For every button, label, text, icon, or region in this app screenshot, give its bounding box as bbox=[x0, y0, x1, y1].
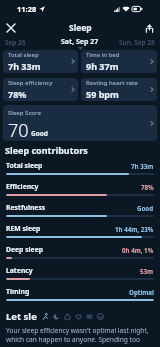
button[interactable]: Total sleep bbox=[0, 157, 160, 178]
staticText: Good bbox=[137, 204, 154, 212]
staticText: 59 bpm bbox=[86, 88, 119, 100]
button[interactable]: Share bbox=[142, 21, 156, 35]
staticText: 78% bbox=[141, 183, 154, 191]
staticText: Resting heart rate bbox=[86, 79, 138, 87]
staticText: Deep sleep bbox=[6, 245, 44, 254]
button[interactable]: Sep 26 bbox=[0, 39, 26, 48]
staticText: Your sleep efficiency wasn't optimal las… bbox=[6, 326, 158, 344]
button[interactable]: Sleep efficiency bbox=[3, 78, 78, 101]
staticText: Total sleep bbox=[6, 161, 43, 170]
staticText: 78% bbox=[8, 88, 27, 100]
staticText: Sleep contributors bbox=[5, 144, 88, 156]
staticText: Optimal bbox=[129, 288, 154, 296]
staticText: 53m bbox=[140, 267, 154, 275]
staticText: Sleep Score bbox=[8, 109, 41, 117]
staticText: Good bbox=[31, 129, 48, 138]
button[interactable]: Heart bbox=[73, 310, 84, 322]
button[interactable]: Deep sleep bbox=[0, 241, 160, 262]
button[interactable]: Restfulness bbox=[0, 199, 160, 220]
button[interactable]: Stress bbox=[84, 310, 95, 322]
button[interactable]: Readiness bbox=[62, 310, 73, 322]
staticText: 9h 37m bbox=[86, 60, 119, 72]
button[interactable]: Sleep bbox=[51, 310, 62, 322]
staticText: 0h 4m, 1% bbox=[122, 246, 154, 254]
button[interactable]: Sleep Score bbox=[3, 105, 157, 141]
button[interactable]: Time in bed bbox=[81, 50, 157, 73]
button[interactable]: Total sleep bbox=[3, 50, 78, 73]
staticText: Sleep efficiency bbox=[8, 79, 53, 87]
button[interactable]: Mood bbox=[95, 310, 106, 322]
staticText: Total sleep bbox=[8, 51, 39, 59]
button[interactable]: Efficiency bbox=[0, 178, 160, 199]
staticText: 7h 33m bbox=[131, 162, 154, 170]
staticText: Sat, Sep 27 bbox=[61, 37, 99, 47]
button[interactable]: Resting heart rate bbox=[81, 78, 157, 101]
staticText: Time in bed bbox=[86, 51, 120, 59]
button[interactable]: REM sleep bbox=[0, 220, 160, 241]
staticText: Latency bbox=[6, 266, 33, 275]
staticText: 11:28 bbox=[17, 4, 37, 14]
staticText: Sleep bbox=[69, 22, 92, 34]
button[interactable]: Sat, Sep 27 bbox=[61, 37, 99, 50]
staticText: 7h 33m bbox=[8, 60, 41, 72]
button[interactable]: Latency bbox=[0, 262, 160, 283]
staticText: Timing bbox=[6, 287, 30, 296]
staticText: 1h 44m, 23% bbox=[115, 225, 154, 233]
staticText: 70 bbox=[8, 118, 29, 141]
button[interactable]: Close bbox=[4, 21, 18, 35]
button[interactable]: Sun, Sep 28 bbox=[119, 39, 160, 48]
staticText: Restfulness bbox=[6, 203, 46, 212]
staticText: REM sleep bbox=[6, 224, 41, 233]
button[interactable]: Let sle bbox=[6, 310, 37, 323]
button[interactable]: Timing bbox=[0, 283, 160, 304]
button[interactable]: Activity bbox=[40, 310, 51, 322]
staticText: Efficiency bbox=[6, 182, 39, 191]
